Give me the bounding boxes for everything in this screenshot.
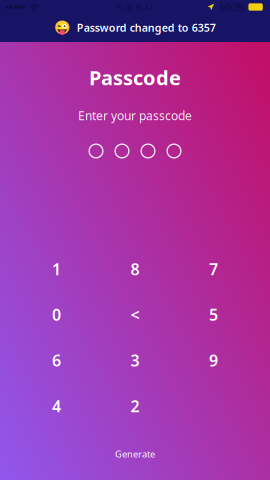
- button[interactable]: 9: [174, 337, 253, 383]
- staticText: 9: [209, 350, 218, 371]
- button[interactable]: 0: [17, 292, 96, 337]
- button[interactable]: 7: [174, 246, 253, 292]
- button[interactable]: Delete: [96, 292, 174, 337]
- button[interactable]: 6: [17, 337, 96, 383]
- staticText: Password changed to 6357: [77, 20, 216, 35]
- staticText: 8: [130, 258, 139, 279]
- staticText: 3: [130, 350, 139, 371]
- staticText: Enter your passcode: [78, 107, 192, 123]
- staticText: <: [130, 304, 139, 325]
- staticText: 7: [209, 258, 218, 279]
- button[interactable]: 2: [96, 383, 174, 429]
- button[interactable]: 😜: [0, 13, 270, 41]
- button[interactable]: 5: [174, 292, 253, 337]
- button[interactable]: [174, 383, 253, 429]
- staticText: 6: [52, 350, 61, 371]
- button[interactable]: 4: [17, 383, 96, 429]
- staticText: 😜: [54, 20, 71, 35]
- button[interactable]: Generate: [80, 443, 190, 465]
- staticText: 4: [52, 395, 61, 417]
- button[interactable]: 3: [96, 337, 174, 383]
- staticText: 0: [52, 304, 61, 325]
- staticText: 100%: [218, 0, 245, 14]
- button[interactable]: 8: [96, 246, 174, 292]
- staticText: 2: [130, 395, 139, 417]
- staticText: 1: [52, 258, 61, 279]
- button[interactable]: 1: [17, 246, 96, 292]
- staticText: Generate: [115, 448, 155, 460]
- staticText: Passcode: [89, 64, 181, 91]
- staticText: 오후 9:41: [116, 1, 154, 13]
- staticText: 5: [209, 304, 218, 325]
